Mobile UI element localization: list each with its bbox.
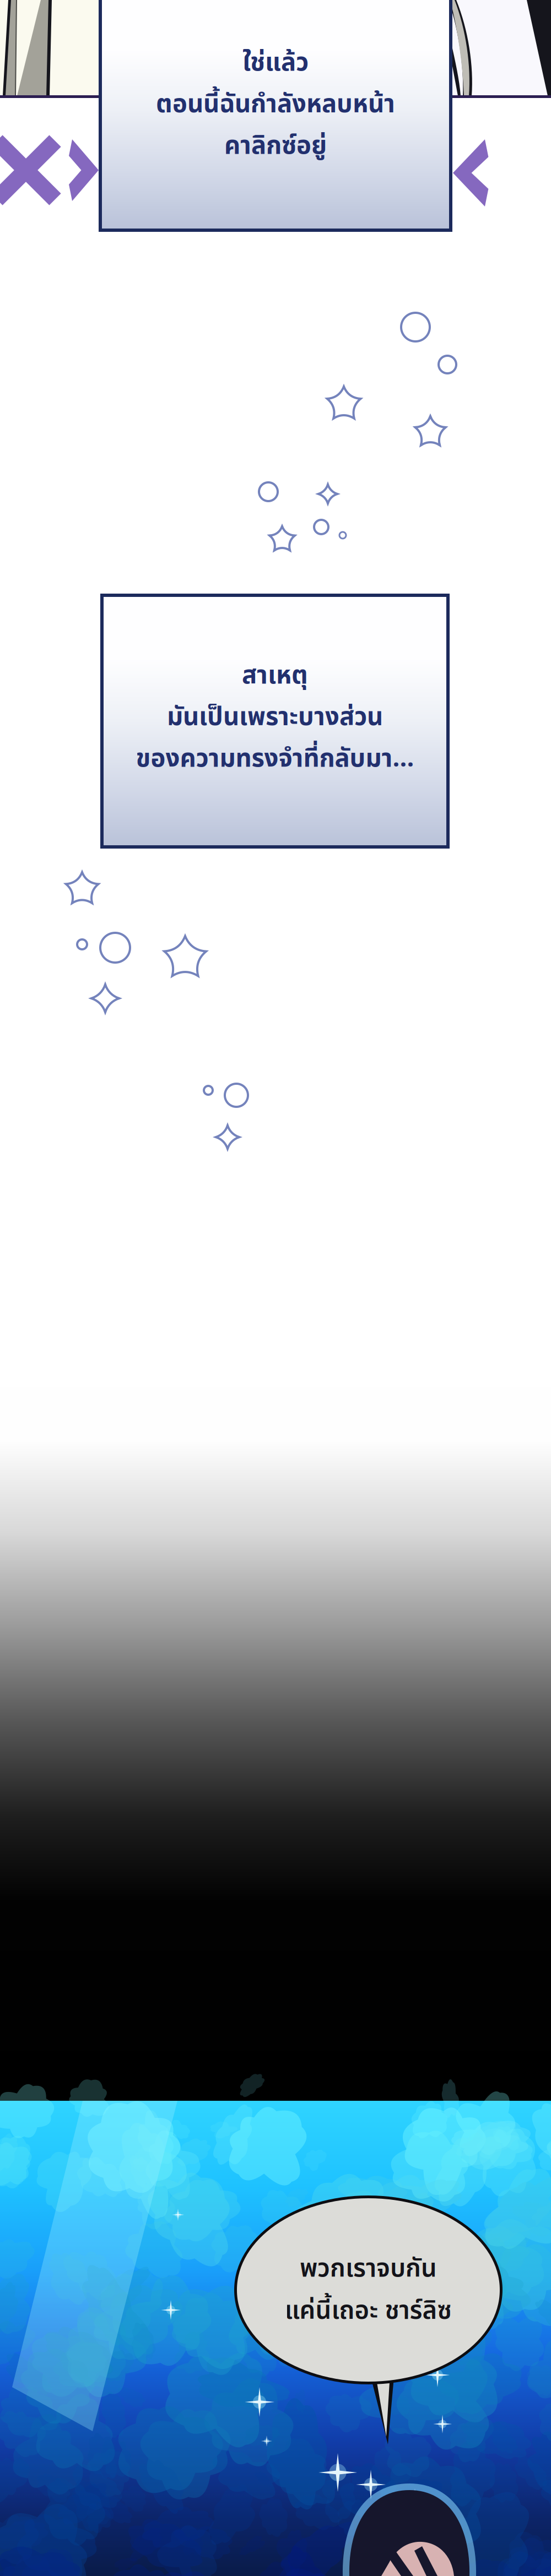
staticText: ใช่แล้ว — [242, 44, 309, 82]
staticText: ของความทรงจำที่กลับมา... — [136, 740, 414, 778]
staticText: สาเหตุ — [242, 657, 308, 695]
staticText: พวกเราจบกัน — [300, 2250, 437, 2288]
staticText: มันเป็นเพราะบางส่วน — [167, 699, 383, 736]
staticText: ตอนนี้ฉันกำลังหลบหน้า — [156, 86, 395, 123]
staticText: คาลิกซ์อยู่ — [224, 127, 327, 165]
staticText: แค่นี้เถอะ ชาร์ลิซ — [285, 2292, 452, 2330]
